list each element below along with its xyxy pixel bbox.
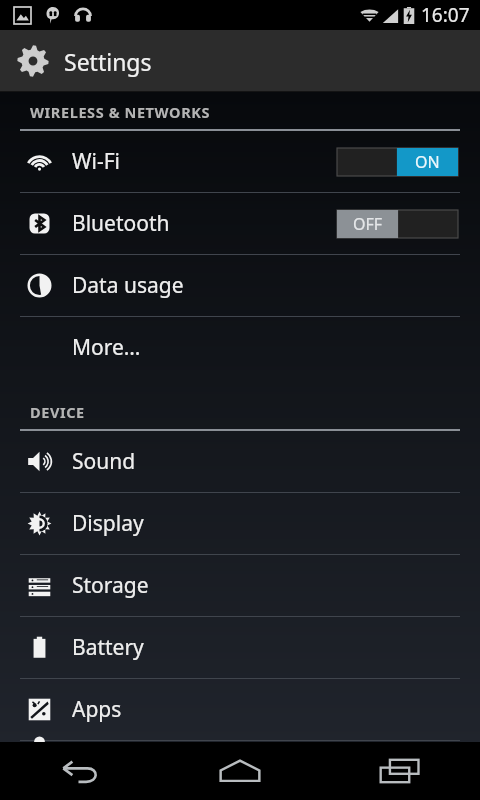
staticText: Data usage: [72, 271, 184, 300]
staticText: More…: [72, 333, 141, 362]
staticText: Display: [72, 509, 144, 538]
button[interactable]: Bluetooth: [0, 193, 480, 254]
staticText: ON: [415, 151, 440, 173]
button[interactable]: Battery: [0, 617, 480, 678]
button[interactable]: Back: [0, 742, 160, 800]
button[interactable]: More…: [0, 317, 480, 378]
staticText: Apps: [72, 695, 122, 724]
button[interactable]: Toggle off: [337, 210, 458, 238]
button[interactable]: Accounts: [0, 741, 480, 744]
button[interactable]: Apps: [0, 679, 480, 740]
button[interactable]: Storage: [0, 555, 480, 616]
button[interactable]: Wi-Fi: [0, 131, 480, 192]
staticText: Bluetooth: [72, 209, 170, 238]
staticText: WIRELESS & NETWORKS: [30, 102, 211, 122]
button[interactable]: Data usage: [0, 255, 480, 316]
button[interactable]: Recent apps: [320, 742, 480, 800]
staticText: DEVICE: [30, 402, 85, 422]
staticText: Wi-Fi: [72, 147, 121, 176]
staticText: 16:07: [421, 2, 470, 28]
button[interactable]: Sound: [0, 431, 480, 492]
button[interactable]: Toggle on: [337, 148, 458, 176]
staticText: Sound: [72, 447, 136, 476]
staticText: Battery: [72, 633, 144, 662]
button[interactable]: Home: [160, 742, 320, 800]
staticText: Settings: [64, 46, 152, 77]
staticText: Storage: [72, 571, 149, 600]
button[interactable]: Display: [0, 493, 480, 554]
staticText: OFF: [353, 213, 383, 235]
staticText: Accounts: [72, 741, 162, 744]
